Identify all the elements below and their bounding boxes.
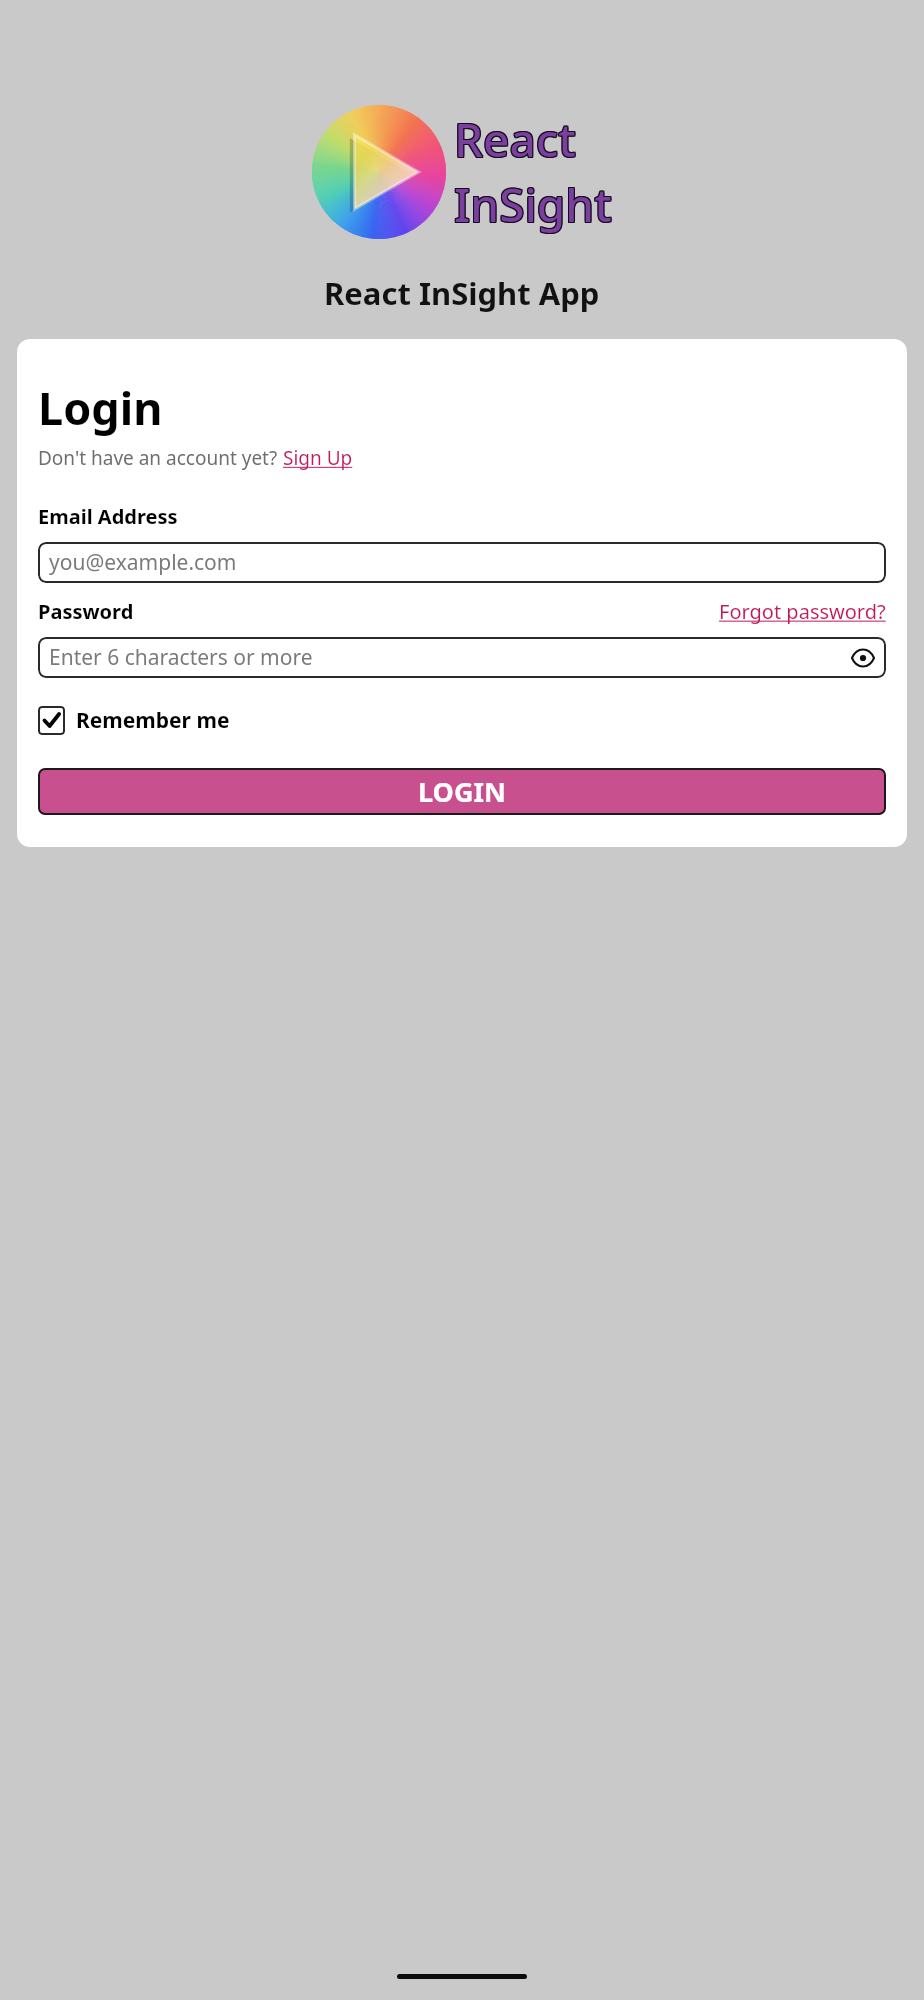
staticText: Remember me bbox=[76, 706, 230, 735]
staticText: you@example.com bbox=[49, 548, 237, 577]
button[interactable]: Forgot password? bbox=[719, 598, 886, 625]
staticText: React InSight App bbox=[324, 272, 600, 314]
button[interactable]: LOGIN bbox=[38, 768, 886, 815]
staticText: Enter 6 characters or more bbox=[49, 643, 313, 672]
staticText: Forgot password? bbox=[719, 598, 886, 625]
staticText: React bbox=[454, 109, 576, 172]
staticText: React bbox=[453, 107, 575, 170]
staticText: InSight bbox=[453, 173, 611, 236]
staticText: React bbox=[454, 108, 576, 171]
button[interactable]: Show password bbox=[850, 645, 876, 671]
staticText: Sign Up bbox=[283, 445, 353, 471]
button[interactable]: you@example.com bbox=[38, 542, 886, 583]
staticText: React bbox=[453, 108, 575, 171]
staticText: React bbox=[455, 107, 577, 170]
staticText: Password bbox=[38, 598, 134, 625]
staticText: InSight bbox=[453, 172, 611, 235]
staticText: React bbox=[455, 109, 577, 172]
staticText: React bbox=[455, 108, 577, 171]
staticText: LOGIN bbox=[418, 773, 506, 810]
staticText: Don't have an account yet? bbox=[38, 445, 283, 471]
staticText: InSight bbox=[455, 172, 613, 235]
button[interactable]: Sign Up bbox=[283, 445, 353, 471]
staticText: InSight bbox=[454, 172, 612, 235]
button[interactable]: Remember me bbox=[38, 706, 230, 735]
staticText: Login bbox=[38, 377, 163, 438]
staticText: InSight bbox=[455, 174, 613, 237]
staticText: React bbox=[453, 109, 575, 172]
staticText: React bbox=[454, 107, 576, 170]
staticText: InSight bbox=[454, 173, 612, 236]
staticText: InSight bbox=[455, 173, 613, 236]
button[interactable]: Enter 6 characters or more bbox=[38, 637, 886, 678]
staticText: InSight bbox=[454, 174, 612, 237]
staticText: Email Address bbox=[38, 503, 178, 530]
staticText: InSight bbox=[453, 174, 611, 237]
